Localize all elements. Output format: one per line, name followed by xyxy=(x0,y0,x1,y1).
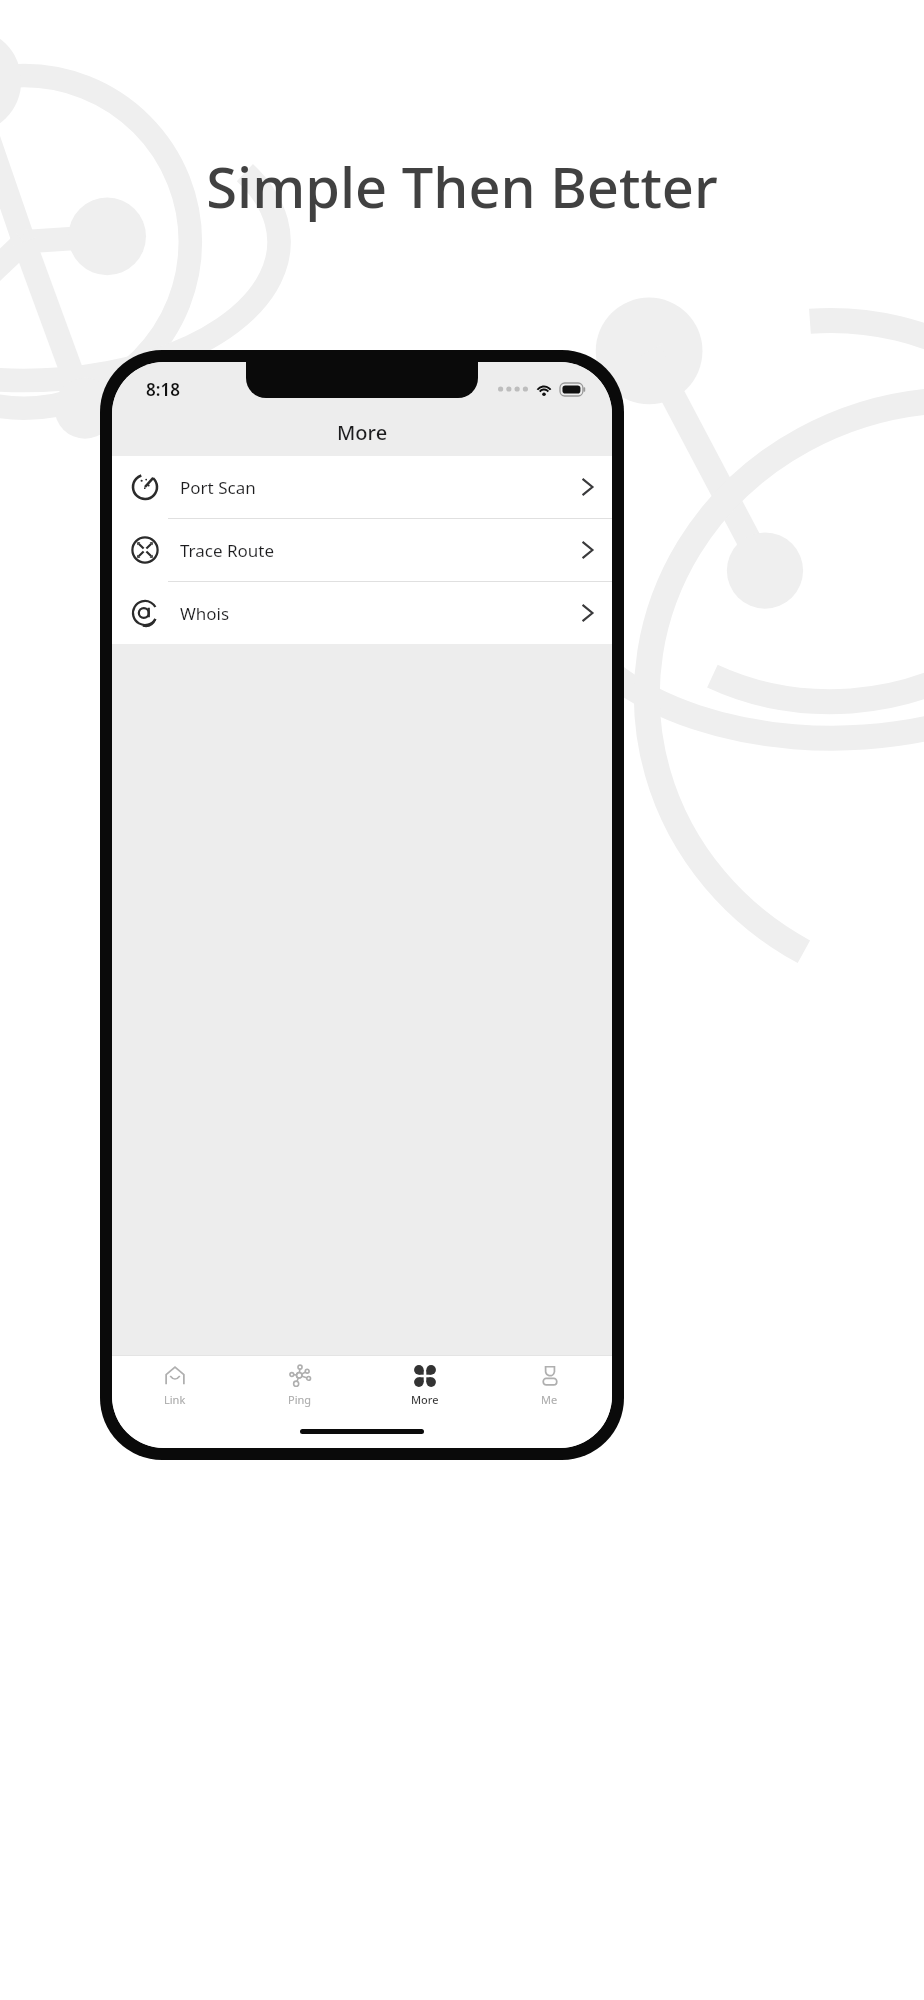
staticText: More xyxy=(411,1392,439,1407)
staticText: Trace Route xyxy=(180,539,275,562)
button[interactable]: Link xyxy=(112,1356,237,1414)
button[interactable]: Trace Route xyxy=(112,519,612,581)
staticText: More xyxy=(337,419,388,446)
button[interactable]: Port Scan xyxy=(112,456,612,518)
staticText: Ping xyxy=(288,1392,312,1407)
staticText: Link xyxy=(164,1392,186,1407)
button[interactable]: Whois xyxy=(112,582,612,644)
staticText: Whois xyxy=(180,602,230,625)
staticText: Simple Then Better xyxy=(206,148,718,224)
staticText: 8:18 xyxy=(146,378,180,401)
button[interactable]: Me xyxy=(487,1356,612,1414)
button[interactable]: More xyxy=(362,1356,487,1414)
staticText: Me xyxy=(541,1392,558,1407)
button[interactable]: Ping xyxy=(237,1356,362,1414)
staticText: Port Scan xyxy=(180,476,256,499)
